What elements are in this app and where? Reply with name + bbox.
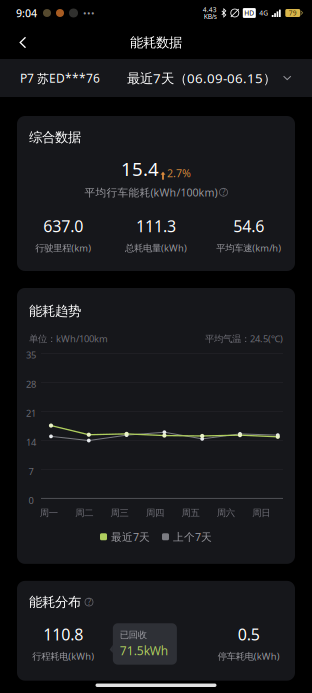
staticText: 能耗分布 (29, 594, 81, 610)
staticText: 行驶里程(km) (35, 242, 91, 254)
staticText: 总耗电量(kWh) (125, 242, 187, 254)
staticText: 停车耗电(kWh) (218, 650, 280, 662)
staticText: 行程耗电(kWh) (32, 650, 94, 662)
staticText: 能耗数据 (130, 34, 182, 51)
staticText: 54.6 (233, 215, 264, 236)
staticText: 周五 (181, 507, 199, 519)
staticText: ••• (83, 7, 95, 19)
staticText: 28 (26, 378, 36, 390)
staticText: 0 (28, 494, 33, 507)
staticText: 综合数据 (29, 129, 81, 145)
staticText: 79 (289, 9, 297, 17)
staticText: 能耗趋势 (29, 303, 81, 319)
staticText: 周三 (111, 507, 129, 519)
staticText: 110.8 (43, 624, 83, 645)
staticText: ? (222, 187, 225, 197)
staticText: 周一 (40, 507, 58, 519)
staticText: 7 (28, 465, 33, 477)
staticText: HD (244, 9, 254, 17)
staticText: P7 苏ED***76 (20, 70, 100, 86)
staticText: 2.7% (167, 166, 191, 180)
staticText: 最近7天 (111, 530, 150, 544)
staticText: 9:04 (16, 6, 37, 20)
staticText: ? (87, 597, 90, 607)
staticText: 最近7天（06.09-06.15） (127, 69, 276, 87)
staticText: 平均车速(km/h) (216, 242, 281, 254)
staticText: 上个7天 (173, 530, 212, 544)
staticText: 周二 (75, 507, 93, 519)
staticText: 平均行车能耗(kWh/100km) (84, 185, 217, 199)
staticText: 637.0 (43, 215, 83, 236)
staticText: 35 (26, 349, 36, 361)
staticText: 4G (259, 9, 268, 17)
staticText: 单位：kWh/100km (29, 332, 108, 345)
staticText: 已回收 (120, 629, 147, 641)
button[interactable]: P7 苏ED***76 (20, 61, 100, 95)
staticText: 4.43 (203, 5, 217, 14)
staticText: 周六 (217, 507, 235, 519)
button[interactable]: Back (8, 27, 38, 57)
staticText: 111.3 (136, 215, 176, 236)
staticText: 14 (26, 436, 36, 448)
staticText: 15.4 (121, 156, 159, 181)
staticText: 21 (26, 407, 36, 419)
staticText: 周四 (146, 507, 164, 519)
staticText: 0.5 (238, 624, 260, 645)
staticText: 平均气温：24.5(℃) (205, 332, 283, 345)
staticText: 71.5kWh (120, 643, 168, 659)
staticText: 周日 (252, 507, 270, 519)
staticText: KB/s (204, 12, 217, 21)
button[interactable]: 最近7天（06.09-06.15） (127, 60, 292, 96)
